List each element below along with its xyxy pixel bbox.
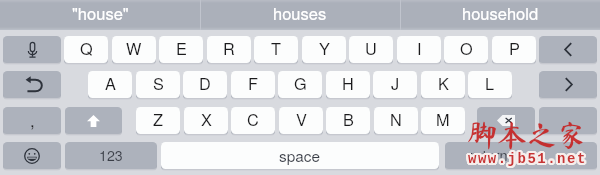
staticText: www.jb51.net xyxy=(469,150,588,166)
button[interactable]: H xyxy=(326,71,370,98)
button[interactable]: U xyxy=(349,36,393,63)
staticText: H xyxy=(342,71,354,94)
staticText: X xyxy=(201,107,212,130)
staticText: www.jb51.net xyxy=(467,150,586,166)
button[interactable]: F xyxy=(231,71,275,98)
staticText: www.jb51.net xyxy=(467,149,586,165)
button[interactable]: G xyxy=(278,71,322,98)
staticText: household xyxy=(462,1,539,25)
button[interactable]: Numbers xyxy=(65,142,157,169)
button[interactable]: Voice input xyxy=(3,36,61,63)
button[interactable]: W xyxy=(112,36,156,63)
staticText: J xyxy=(391,71,400,94)
button[interactable]: Z xyxy=(136,107,180,134)
staticText: www.jb51.net xyxy=(470,151,589,167)
staticText: houses xyxy=(273,1,327,25)
staticText: www.jb51.net xyxy=(468,153,587,169)
button[interactable]: Return xyxy=(445,142,597,169)
staticText: www.jb51.net xyxy=(467,152,586,168)
button[interactable]: Emoji xyxy=(3,142,61,169)
staticText: C xyxy=(247,107,259,130)
staticText: return xyxy=(470,144,508,165)
button[interactable]: K xyxy=(421,71,465,98)
staticText: www.jb51.net xyxy=(469,151,588,167)
button[interactable]: P xyxy=(492,36,536,63)
staticText: M xyxy=(436,107,450,130)
staticText: www.jb51.net xyxy=(469,152,588,168)
button[interactable]: T xyxy=(254,36,298,63)
button[interactable]: X xyxy=(184,107,228,134)
button[interactable]: houses xyxy=(200,0,400,30)
staticText: www.jb51.net xyxy=(466,152,585,168)
staticText: D xyxy=(199,71,211,94)
staticText: www.jb51.net xyxy=(469,153,588,169)
button[interactable]: Undo xyxy=(3,71,61,98)
button[interactable]: Backspace xyxy=(477,107,535,134)
button[interactable]: Comma xyxy=(3,107,61,134)
staticText: Q xyxy=(80,36,93,59)
staticText: www.jb51.net xyxy=(470,152,589,168)
button[interactable]: E xyxy=(159,36,203,63)
button[interactable]: O xyxy=(444,36,488,63)
button[interactable]: Q xyxy=(64,36,108,63)
staticText: 脚本之家 xyxy=(467,120,587,150)
staticText: N xyxy=(390,107,402,130)
staticText: O xyxy=(460,36,473,59)
staticText: www.jb51.net xyxy=(469,149,588,165)
staticText: L xyxy=(485,71,495,94)
staticText: www.jb51.net xyxy=(468,151,587,167)
button[interactable]: Shift xyxy=(65,107,122,134)
button[interactable]: S xyxy=(136,71,180,98)
button[interactable]: B xyxy=(326,107,370,134)
staticText: I xyxy=(417,36,422,59)
staticText: www.jb51.net xyxy=(467,153,586,169)
staticText: www.jb51.net xyxy=(468,152,587,168)
button[interactable]: Hide keyboard xyxy=(539,107,597,134)
staticText: K xyxy=(438,71,449,94)
staticText: www.jb51.net xyxy=(466,150,585,166)
staticText: www.jb51.net xyxy=(466,151,585,167)
staticText: V xyxy=(296,107,307,130)
button[interactable]: I xyxy=(397,36,441,63)
button[interactable]: C xyxy=(231,107,275,134)
button[interactable]: M xyxy=(421,107,465,134)
button[interactable]: Next suggestion xyxy=(539,71,597,98)
staticText: B xyxy=(343,107,354,130)
staticText: Y xyxy=(319,36,330,59)
staticText: , xyxy=(30,107,35,131)
staticText: www.jb51.net xyxy=(468,150,587,166)
staticText: www.jb51.net xyxy=(470,150,589,166)
staticText: U xyxy=(365,36,377,59)
button[interactable]: R xyxy=(207,36,251,63)
staticText: E xyxy=(176,36,187,59)
staticText: Z xyxy=(153,107,163,130)
staticText: A xyxy=(105,71,116,94)
staticText: 123 xyxy=(99,145,123,165)
button[interactable]: Previous suggestion xyxy=(539,36,597,63)
staticText: S xyxy=(153,71,164,94)
button[interactable]: D xyxy=(183,71,227,98)
staticText: T xyxy=(271,36,281,59)
button[interactable]: household xyxy=(400,0,600,30)
button[interactable]: V xyxy=(279,107,323,134)
button[interactable]: "house" xyxy=(0,0,200,30)
button[interactable]: Space xyxy=(161,142,439,169)
button[interactable]: Y xyxy=(302,36,346,63)
staticText: W xyxy=(126,36,142,59)
button[interactable]: N xyxy=(374,107,418,134)
staticText: R xyxy=(223,36,235,59)
staticText: space xyxy=(279,144,321,166)
button[interactable]: A xyxy=(88,71,132,98)
staticText: G xyxy=(294,71,307,94)
staticText: P xyxy=(509,36,520,59)
staticText: www.jb51.net xyxy=(468,149,587,165)
button[interactable]: J xyxy=(373,71,417,98)
staticText: www.jb51.net xyxy=(467,151,586,167)
staticText: F xyxy=(248,71,258,94)
button[interactable]: L xyxy=(468,71,512,98)
staticText: "house" xyxy=(72,1,129,25)
